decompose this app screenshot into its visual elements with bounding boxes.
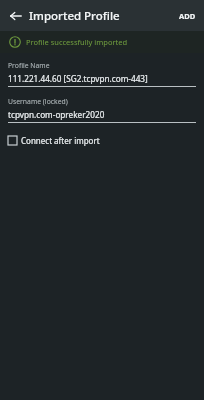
button[interactable]: ADD: [171, 5, 204, 27]
staticText: Username (locked): [8, 97, 68, 106]
staticText: Profile Name: [8, 61, 50, 70]
button[interactable]: Profile Name: [0, 61, 204, 87]
staticText: Connect after import: [21, 135, 100, 146]
staticText: 111.221.44.60 [SG2.tcpvpn.com-443]: [8, 73, 148, 84]
staticText: Imported Profile: [29, 8, 120, 24]
staticText: tcpvpn.com-opreker2020: [8, 109, 105, 120]
button[interactable]: Back: [5, 5, 26, 26]
button[interactable]: Username (locked): [0, 97, 204, 123]
button[interactable]: Connect after import: [0, 132, 204, 149]
staticText: Profile successfully imported: [26, 37, 128, 47]
staticText: ADD: [179, 11, 196, 21]
